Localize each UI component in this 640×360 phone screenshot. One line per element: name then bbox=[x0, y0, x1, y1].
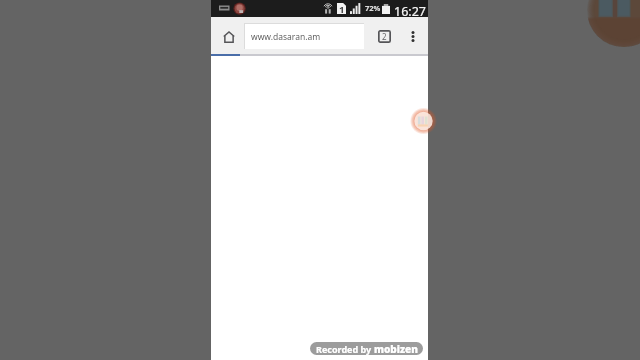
button[interactable]: More options bbox=[403, 26, 423, 46]
staticText: 72% bbox=[365, 3, 381, 13]
staticText: mobizen bbox=[374, 342, 418, 355]
staticText: www.dasaran.am bbox=[251, 31, 321, 43]
staticText: Recorded by bbox=[316, 343, 374, 355]
staticText: 1 bbox=[339, 3, 345, 14]
button[interactable]: www.dasaran.am bbox=[245, 24, 364, 49]
staticText: 16:27 bbox=[394, 3, 426, 20]
button[interactable]: Home bbox=[216, 24, 241, 49]
staticText: 2 bbox=[382, 31, 387, 42]
button[interactable]: Tabs bbox=[374, 26, 395, 47]
